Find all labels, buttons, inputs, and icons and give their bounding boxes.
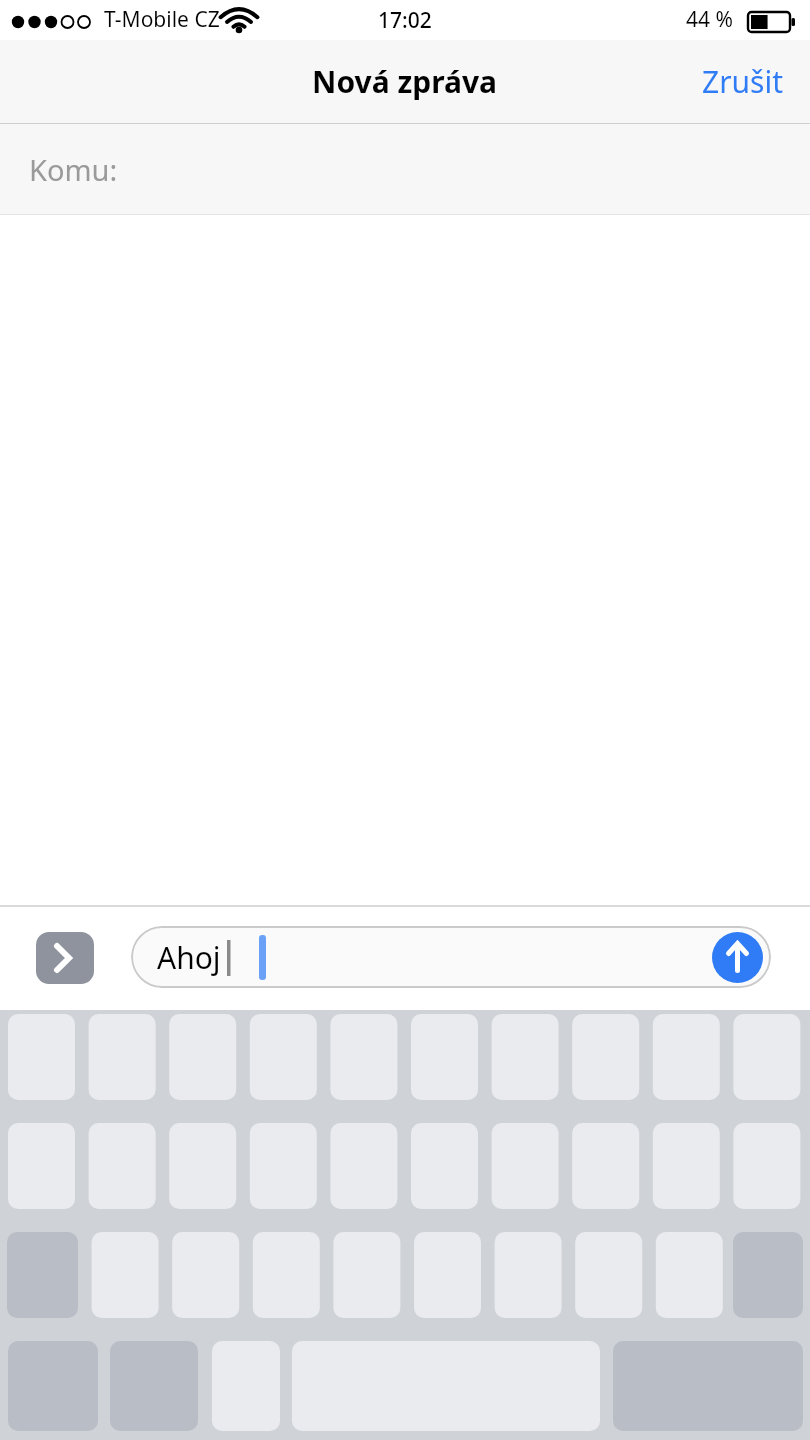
button[interactable]: Keyboard key — [243, 1010, 324, 1119]
staticText: 17:02 — [378, 6, 432, 35]
button[interactable]: Keyboard key — [729, 1337, 810, 1440]
button[interactable]: Keyboard key — [405, 1119, 486, 1228]
button[interactable]: Keyboard key — [405, 1228, 486, 1337]
button[interactable]: Keyboard key — [81, 1337, 162, 1440]
button[interactable]: Keyboard key — [324, 1228, 405, 1337]
button[interactable]: Keyboard key — [405, 1337, 486, 1440]
button[interactable]: Keyboard key — [567, 1337, 648, 1440]
button[interactable]: Keyboard key — [0, 1119, 81, 1228]
button[interactable]: Keyboard key — [648, 1337, 729, 1440]
button[interactable]: Ahoj — [131, 926, 771, 988]
button[interactable]: Keyboard key — [162, 1337, 243, 1440]
button[interactable]: Keyboard key — [729, 1228, 810, 1337]
button[interactable]: Keyboard key — [729, 1119, 810, 1228]
button[interactable]: Keyboard key — [486, 1010, 567, 1119]
staticText: Zrušit — [702, 61, 784, 102]
button[interactable]: Keyboard key — [243, 1119, 324, 1228]
button[interactable]: Keyboard key — [162, 1010, 243, 1119]
button[interactable]: Keyboard key — [486, 1337, 567, 1440]
button[interactable]: Keyboard key — [486, 1228, 567, 1337]
staticText: Komu: — [29, 150, 118, 189]
button[interactable]: Keyboard key — [729, 1010, 810, 1119]
button[interactable]: Send — [712, 932, 763, 983]
button[interactable]: Keyboard key — [324, 1119, 405, 1228]
button[interactable]: Keyboard key — [243, 1228, 324, 1337]
button[interactable]: Keyboard key — [162, 1228, 243, 1337]
button[interactable]: Keyboard key — [324, 1337, 405, 1440]
button[interactable]: Show app drawer — [36, 932, 94, 984]
staticText: T-Mobile CZ — [104, 5, 220, 34]
button[interactable]: Keyboard key — [648, 1010, 729, 1119]
staticText: Nová zpráva — [312, 61, 498, 102]
button[interactable]: Keyboard key — [567, 1010, 648, 1119]
button[interactable]: Keyboard key — [81, 1228, 162, 1337]
button[interactable]: Keyboard key — [0, 1337, 81, 1440]
button[interactable]: Keyboard key — [648, 1228, 729, 1337]
button[interactable]: Keyboard key — [0, 1228, 81, 1337]
button[interactable]: Komu: — [0, 124, 810, 214]
button[interactable]: Keyboard key — [243, 1337, 324, 1440]
button[interactable]: Keyboard key — [81, 1119, 162, 1228]
staticText: Ahoj — [157, 937, 221, 978]
button[interactable]: Keyboard key — [0, 1010, 81, 1119]
button[interactable]: Keyboard key — [567, 1119, 648, 1228]
button[interactable]: Keyboard key — [162, 1119, 243, 1228]
button[interactable]: Keyboard key — [405, 1010, 486, 1119]
button[interactable]: Keyboard key — [567, 1228, 648, 1337]
button[interactable]: Zrušit — [676, 45, 810, 118]
button[interactable]: Keyboard key — [486, 1119, 567, 1228]
button[interactable]: Keyboard key — [324, 1010, 405, 1119]
button[interactable]: Keyboard key — [648, 1119, 729, 1228]
button[interactable]: Keyboard key — [81, 1010, 162, 1119]
staticText: 44 % — [686, 5, 733, 34]
